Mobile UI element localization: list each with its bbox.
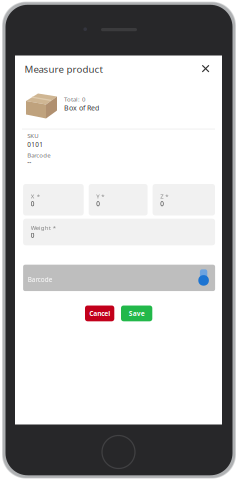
button[interactable]: Close	[198, 61, 214, 77]
button[interactable]: Z *	[153, 184, 215, 215]
staticText: 0	[160, 199, 164, 208]
button[interactable]: Y *	[89, 184, 148, 215]
staticText: Save	[129, 309, 145, 318]
staticText: Barcode	[27, 151, 50, 159]
button[interactable]: X *	[23, 184, 84, 215]
staticText: SKU	[27, 132, 38, 140]
staticText: Box of Red	[64, 103, 99, 112]
button[interactable]: Weight *	[23, 219, 215, 245]
staticText: 0	[31, 199, 35, 208]
staticText: Cancel	[89, 309, 110, 318]
staticText: Barcode	[28, 275, 53, 284]
staticText: 0	[31, 231, 35, 240]
button[interactable]: Cancel	[85, 305, 114, 321]
staticText: 0	[96, 199, 100, 208]
staticText: --	[27, 158, 31, 166]
staticText: Z *	[160, 192, 168, 200]
staticText: Measure product	[25, 62, 103, 76]
staticText: Weight *	[31, 224, 56, 232]
staticText: 0101	[27, 140, 43, 149]
staticText: Total: 0	[64, 95, 85, 103]
staticText: X *	[31, 192, 40, 200]
staticText: Y *	[96, 192, 104, 200]
button[interactable]: Barcode	[23, 265, 215, 291]
button[interactable]: Save	[121, 305, 152, 321]
